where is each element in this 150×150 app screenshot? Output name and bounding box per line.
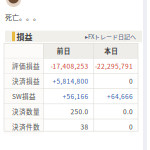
staticText: -22,295,791 <box>95 61 133 71</box>
staticText: 死亡。。。 <box>5 12 40 22</box>
staticText: 250.0 <box>70 107 88 116</box>
staticText: 0.0 <box>123 107 133 116</box>
staticText: 決済件数 <box>12 122 40 131</box>
staticText: 本日 <box>104 46 118 55</box>
staticText: +56,166 <box>62 91 88 101</box>
staticText: 評価損益 <box>12 61 40 71</box>
staticText: 決済損益 <box>12 76 40 86</box>
staticText: +5,814,800 <box>52 76 88 86</box>
staticText: -17,408,253 <box>50 61 88 71</box>
staticText: +64,666 <box>107 91 133 101</box>
staticText: 0 <box>129 122 133 131</box>
staticText: SW損益 <box>12 91 36 101</box>
staticText: 決済数量 <box>12 107 40 116</box>
staticText: ▸FXトレード日記へ <box>85 32 136 41</box>
staticText: 損益 <box>16 31 32 42</box>
button[interactable]: 損益 <box>5 31 142 42</box>
staticText: 38 <box>80 122 88 131</box>
staticText: 前日 <box>57 46 71 55</box>
staticText: 0 <box>129 76 133 86</box>
